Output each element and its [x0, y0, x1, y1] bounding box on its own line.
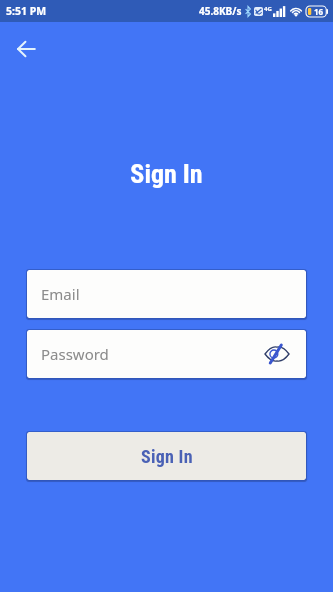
staticText: Sign In — [0, 159, 333, 189]
staticText: 4G — [264, 5, 272, 13]
staticText: 5:51 PM — [6, 4, 47, 18]
button[interactable]: Email — [27, 270, 306, 318]
staticText: 16 — [314, 6, 324, 17]
button[interactable]: Password — [27, 330, 306, 378]
staticText: 45.8KB/s — [199, 4, 242, 18]
button[interactable]: Sign In — [27, 432, 306, 480]
button[interactable]: Show password — [262, 341, 292, 367]
staticText: Sign In — [141, 446, 193, 467]
button[interactable]: Back — [9, 32, 42, 65]
staticText: Password — [41, 344, 109, 364]
staticText: Email — [41, 284, 80, 304]
